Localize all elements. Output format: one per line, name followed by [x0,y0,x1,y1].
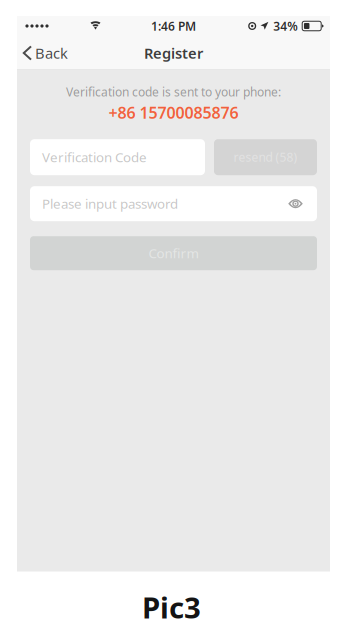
button[interactable]: Back [17,36,78,70]
staticText: 1:46 PM [151,18,196,34]
staticText: Register [144,43,203,63]
staticText: Confirm [148,244,198,262]
staticText: Verification code is sent to your phone: [66,84,281,100]
staticText: 34% [273,18,298,34]
staticText: Verification Code [42,148,147,166]
staticText: +86 15700085876 [108,102,238,123]
staticText: Back [35,43,68,63]
staticText: Please input password [42,195,178,212]
staticText: Pic3 [142,587,201,626]
button[interactable]: Show password [282,187,309,221]
staticText: resend (58) [233,149,297,165]
